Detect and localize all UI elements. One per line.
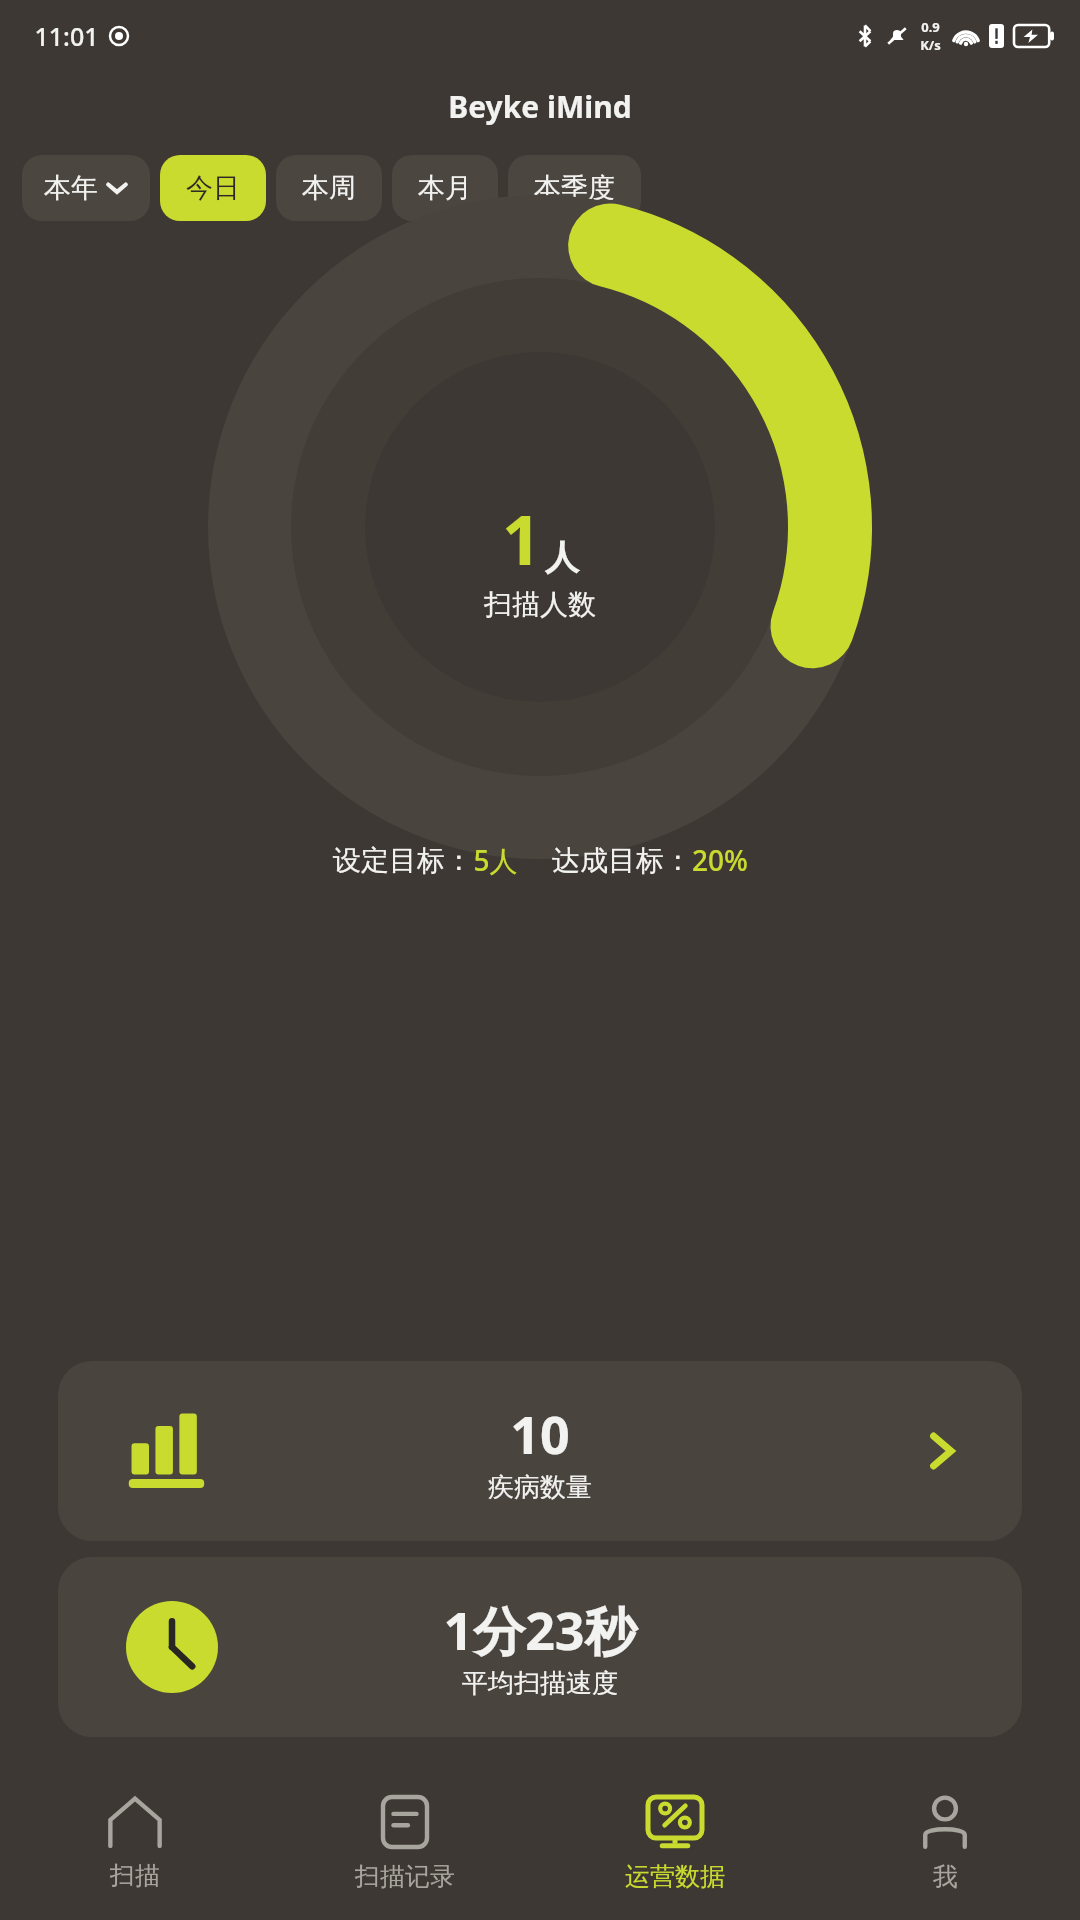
staticText: 1	[502, 492, 541, 585]
button[interactable]: 扫描记录	[270, 1789, 540, 1898]
button[interactable]: 我	[810, 1789, 1080, 1898]
staticText: 运营数据	[625, 1861, 725, 1892]
staticText: 达成目标：	[552, 843, 692, 878]
staticText: 平均扫描速度	[462, 1667, 618, 1700]
staticText: 20%	[692, 841, 748, 879]
staticText: 我	[933, 1861, 958, 1892]
staticText: 0.9	[921, 18, 940, 36]
staticText: 本月	[418, 171, 472, 205]
staticText: 扫描	[110, 1860, 160, 1891]
staticText: Beyke iMind	[448, 86, 632, 127]
staticText: 11:01	[34, 19, 99, 53]
button[interactable]: 本月	[392, 155, 498, 221]
staticText: 10	[510, 1398, 570, 1469]
staticText: 疾病数量	[488, 1471, 592, 1504]
staticText: 本周	[302, 171, 356, 205]
staticText: K/s	[920, 36, 941, 54]
button[interactable]: 扫描	[0, 1790, 270, 1897]
button[interactable]: 1分23秒	[58, 1557, 1022, 1737]
staticText: 设定目标：	[333, 843, 473, 878]
staticText: 1分23秒	[443, 1594, 637, 1665]
button[interactable]: 运营数据	[540, 1789, 810, 1898]
staticText: 5人	[473, 841, 518, 879]
staticText: 扫描记录	[355, 1861, 455, 1892]
staticText: 本年	[44, 171, 98, 205]
staticText: 扫描人数	[484, 587, 596, 622]
staticText: 本季度	[534, 171, 615, 205]
button[interactable]: 本年	[22, 155, 150, 221]
other: 查看详情	[918, 1427, 966, 1475]
button[interactable]: 本季度	[508, 155, 641, 221]
button[interactable]: 本周	[276, 155, 382, 221]
button[interactable]: 今日	[160, 155, 266, 221]
staticText: 今日	[186, 171, 240, 205]
button[interactable]: 10	[58, 1361, 1022, 1541]
staticText: 人	[545, 536, 579, 579]
